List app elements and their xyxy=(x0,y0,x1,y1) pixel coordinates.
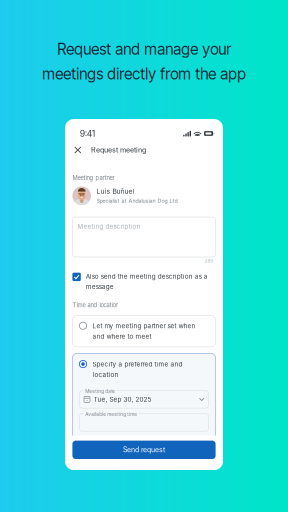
staticText: Request and manage your meetings directl… xyxy=(42,40,246,83)
staticText: Meeting description xyxy=(77,222,140,230)
button[interactable]: Let my meeting partner set when and wher… xyxy=(72,315,216,347)
staticText: Meeting date xyxy=(85,388,115,394)
button[interactable]: Send request xyxy=(72,441,216,459)
staticText: Time and location xyxy=(72,302,118,308)
staticText: Send request xyxy=(123,446,165,454)
staticText: Meeting partner xyxy=(72,174,114,181)
staticText: Available meeting time xyxy=(85,411,137,417)
staticText: Tue, Sep 30, 2025 xyxy=(94,396,152,403)
staticText: 280 xyxy=(205,258,214,264)
staticText: Specify a preferred time and location xyxy=(93,360,183,379)
staticText: Request meeting xyxy=(91,146,146,154)
button[interactable]: Meeting description xyxy=(72,217,216,257)
staticText: 9:41 xyxy=(80,128,96,139)
button[interactable]: Tue, Sep 30, 2025 xyxy=(79,391,209,408)
staticText: Let my meeting partner set when and wher… xyxy=(93,322,196,340)
button[interactable]: Close xyxy=(71,143,84,156)
button[interactable]: Also send the meeting description as a m… xyxy=(72,273,216,291)
button[interactable]: Available meeting time xyxy=(79,414,209,431)
staticText: Specialist at Andalusian Dog Ltd xyxy=(97,198,178,204)
staticText: Luis Buñuel xyxy=(97,187,135,195)
staticText: Also send the meeting description as a m… xyxy=(86,273,208,291)
